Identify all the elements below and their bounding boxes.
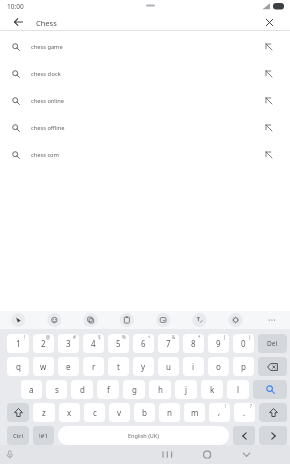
button[interactable]: m bbox=[184, 403, 205, 422]
button[interactable]: 5 bbox=[108, 334, 129, 353]
button[interactable]: 8 bbox=[183, 334, 204, 353]
button[interactable] bbox=[11, 16, 26, 28]
button[interactable]: s bbox=[46, 380, 67, 399]
staticText: u bbox=[166, 361, 171, 372]
button[interactable] bbox=[259, 426, 287, 445]
button[interactable]: j bbox=[175, 380, 197, 399]
button[interactable]: l bbox=[227, 380, 249, 399]
button[interactable] bbox=[254, 311, 290, 329]
staticText: * bbox=[198, 334, 201, 340]
staticText: j bbox=[185, 384, 188, 395]
button[interactable] bbox=[258, 357, 287, 376]
staticText: 0 bbox=[241, 338, 246, 349]
button[interactable]: o bbox=[208, 357, 229, 376]
staticText: # bbox=[73, 334, 76, 340]
button[interactable]: 9 bbox=[208, 334, 229, 353]
button[interactable]: , bbox=[209, 403, 230, 422]
button[interactable] bbox=[138, 445, 178, 464]
button[interactable] bbox=[233, 426, 255, 445]
button[interactable]: b bbox=[134, 403, 155, 422]
staticText: e bbox=[66, 361, 71, 372]
staticText: 5 bbox=[116, 338, 121, 349]
button[interactable]: a bbox=[21, 380, 42, 399]
staticText: b bbox=[142, 407, 147, 418]
staticText: a bbox=[29, 384, 34, 395]
button[interactable]: !#1 bbox=[33, 426, 54, 445]
button[interactable] bbox=[218, 445, 258, 464]
button[interactable] bbox=[0, 311, 37, 329]
button[interactable]: f bbox=[97, 380, 119, 399]
button[interactable]: chess game bbox=[0, 33, 290, 60]
button[interactable]: w bbox=[33, 357, 54, 376]
staticText: % bbox=[122, 334, 126, 340]
button[interactable]: chess offline bbox=[0, 114, 290, 141]
staticText: g bbox=[132, 384, 137, 395]
button[interactable]: Ctrl bbox=[7, 426, 29, 445]
button[interactable]: x bbox=[59, 403, 80, 422]
button[interactable]: 4 bbox=[83, 334, 104, 353]
staticText: !#1 bbox=[39, 432, 48, 440]
button[interactable]: n bbox=[159, 403, 180, 422]
staticText: 3 bbox=[66, 338, 71, 349]
staticText: t bbox=[117, 361, 120, 372]
staticText: $ bbox=[98, 334, 101, 340]
button[interactable]: 3 bbox=[58, 334, 79, 353]
staticText: ? bbox=[250, 403, 252, 409]
button[interactable]: 2 bbox=[33, 334, 54, 353]
button[interactable]: chess com bbox=[0, 141, 290, 168]
button[interactable]: c bbox=[84, 403, 105, 422]
staticText: ! bbox=[24, 334, 26, 340]
staticText: @ bbox=[46, 334, 51, 340]
button[interactable]: q bbox=[7, 357, 29, 376]
staticText: r bbox=[92, 361, 96, 372]
button[interactable]: 6 bbox=[133, 334, 154, 353]
button[interactable]: h bbox=[149, 380, 171, 399]
button[interactable] bbox=[37, 311, 74, 329]
staticText: ! bbox=[225, 403, 227, 409]
staticText: 1 bbox=[16, 338, 21, 349]
button[interactable] bbox=[7, 403, 29, 422]
button[interactable]: e bbox=[58, 357, 79, 376]
button[interactable]: English (UK) bbox=[58, 426, 229, 445]
staticText: 7 bbox=[166, 338, 171, 349]
button[interactable] bbox=[110, 311, 146, 329]
button[interactable] bbox=[146, 311, 182, 329]
button[interactable]: chess online bbox=[0, 87, 290, 114]
staticText: y bbox=[141, 361, 146, 372]
button[interactable] bbox=[259, 403, 287, 422]
button[interactable]: z bbox=[33, 403, 55, 422]
staticText: chess online bbox=[31, 97, 265, 105]
button[interactable]: i bbox=[183, 357, 204, 376]
staticText: 2 bbox=[41, 338, 46, 349]
button[interactable]: 1 bbox=[7, 334, 29, 353]
staticText: & bbox=[172, 334, 176, 340]
staticText: p bbox=[241, 361, 246, 372]
button[interactable] bbox=[218, 311, 254, 329]
button[interactable] bbox=[253, 380, 287, 399]
button[interactable]: g bbox=[123, 380, 145, 399]
button[interactable]: v bbox=[109, 403, 130, 422]
staticText: d bbox=[80, 384, 85, 395]
button[interactable]: u bbox=[158, 357, 179, 376]
button[interactable]: chess clock bbox=[0, 60, 290, 87]
staticText: 4 bbox=[91, 338, 96, 349]
button[interactable] bbox=[262, 15, 276, 29]
button[interactable]: t bbox=[108, 357, 129, 376]
staticText: ^ bbox=[148, 334, 151, 340]
staticText: f bbox=[107, 384, 110, 395]
button[interactable] bbox=[74, 311, 110, 329]
button[interactable]: 0 bbox=[233, 334, 254, 353]
button[interactable]: d bbox=[71, 380, 93, 399]
button[interactable]: y bbox=[133, 357, 154, 376]
staticText: 8 bbox=[191, 338, 196, 349]
button[interactable]: p bbox=[233, 357, 254, 376]
staticText: chess com bbox=[31, 151, 265, 159]
button[interactable]: 7 bbox=[158, 334, 179, 353]
staticText: q bbox=[16, 361, 21, 372]
button[interactable] bbox=[182, 311, 218, 329]
button[interactable]: Del bbox=[258, 334, 287, 353]
button[interactable]: r bbox=[83, 357, 104, 376]
button[interactable]: . bbox=[234, 403, 255, 422]
button[interactable] bbox=[178, 445, 218, 464]
button[interactable]: k bbox=[201, 380, 223, 399]
